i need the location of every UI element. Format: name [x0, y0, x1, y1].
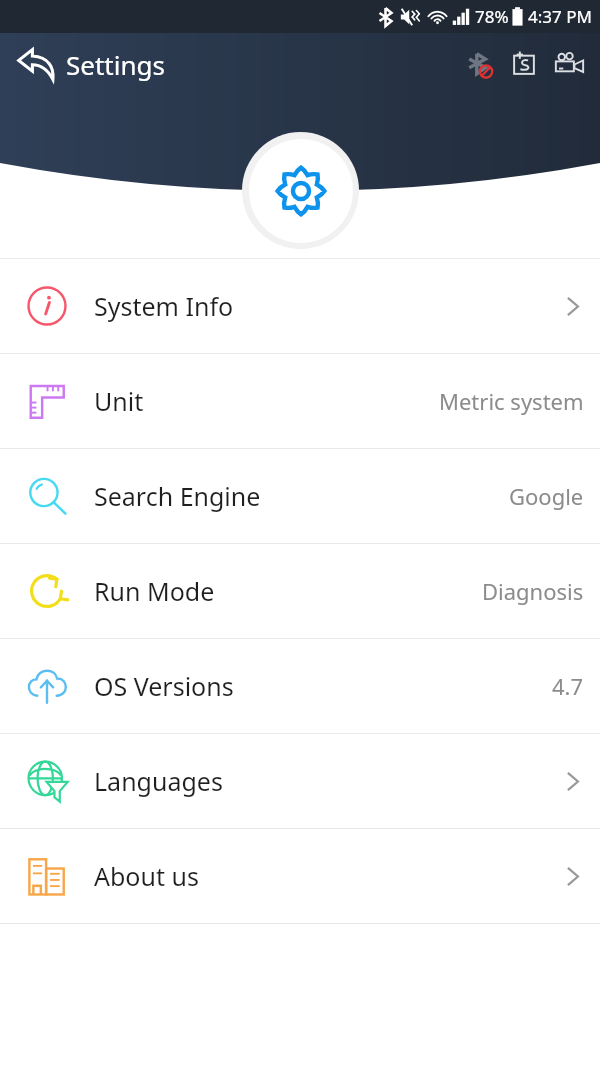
staticText: Metric system [439, 386, 584, 416]
button[interactable]: OS Versions [0, 639, 600, 733]
button[interactable]: Screenshot [503, 43, 545, 85]
staticText: Search Engine [94, 479, 261, 513]
staticText: 4:37 PM [528, 5, 592, 28]
staticText: Languages [94, 764, 223, 798]
button[interactable]: Back [10, 38, 62, 90]
staticText: About us [94, 859, 199, 893]
button[interactable]: Record video [548, 43, 590, 85]
staticText: Unit [94, 384, 144, 418]
staticText: 78% [475, 5, 509, 28]
staticText: 4.7 [552, 671, 584, 701]
staticText: Settings [66, 47, 165, 82]
staticText: System Info [94, 289, 234, 323]
button[interactable]: Run Mode [0, 544, 600, 638]
staticText: Google [509, 481, 584, 511]
button[interactable]: About us [0, 829, 600, 923]
staticText: Run Mode [94, 574, 215, 608]
button[interactable]: Unit [0, 354, 600, 448]
staticText: OS Versions [94, 669, 234, 703]
staticText: Diagnosis [482, 576, 584, 606]
button[interactable]: Languages [0, 734, 600, 828]
button[interactable]: Bluetooth off [458, 43, 500, 85]
button[interactable]: Search Engine [0, 449, 600, 543]
button[interactable]: System Info [0, 259, 600, 353]
